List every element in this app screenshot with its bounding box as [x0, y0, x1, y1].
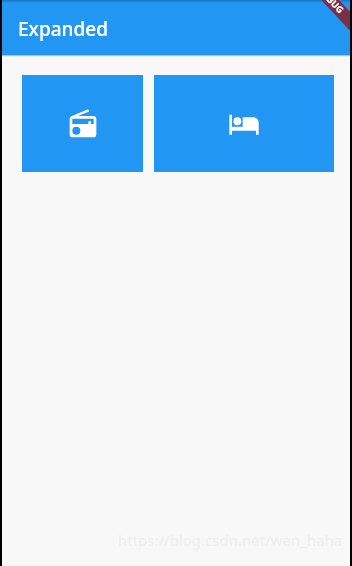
- button[interactable]: Hotel: [154, 75, 334, 172]
- staticText: DEBUG: [316, 0, 347, 15]
- staticText: Expanded: [18, 16, 108, 42]
- staticText: https://blog.csdn.net/wen_haha: [118, 530, 343, 550]
- button[interactable]: Radio: [22, 75, 143, 172]
